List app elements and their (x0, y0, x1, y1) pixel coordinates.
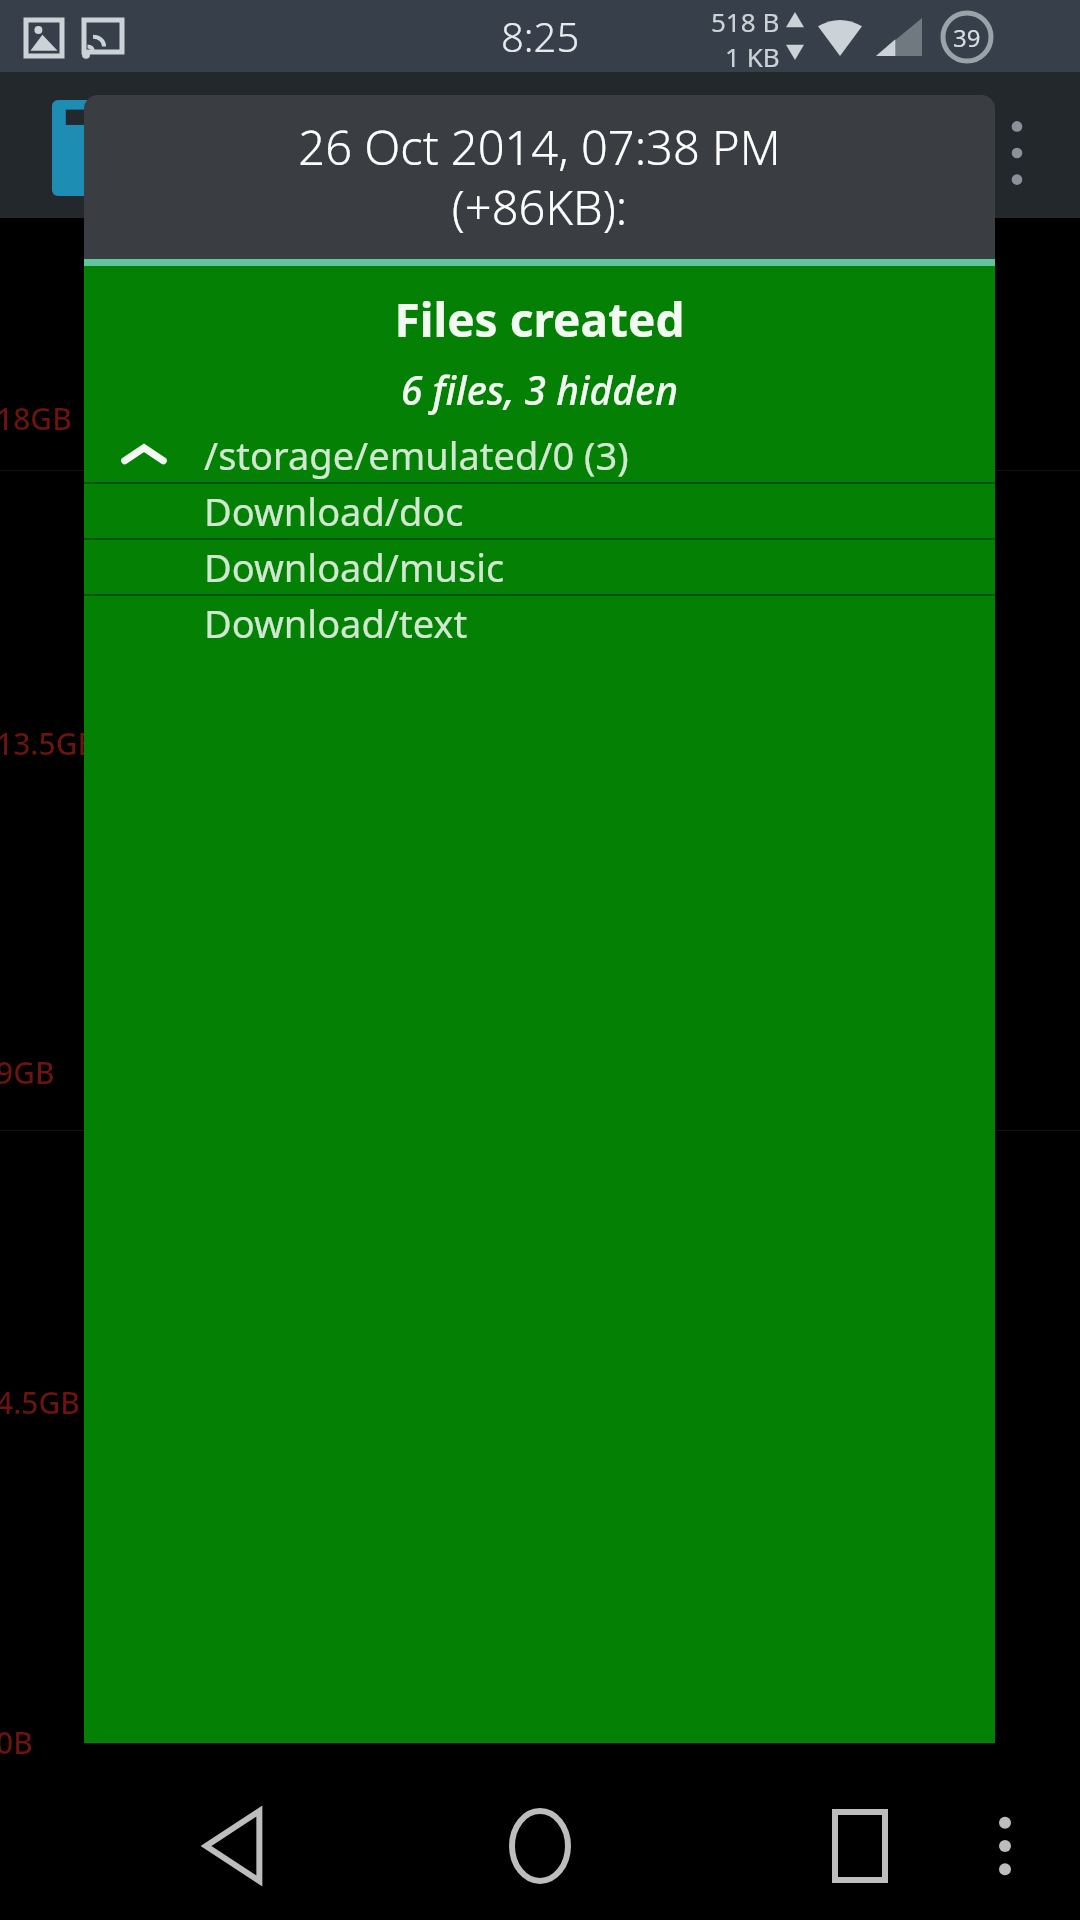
staticText: Download/music (204, 541, 505, 593)
other: Collapse group (84, 428, 204, 482)
staticText: 18GB (0, 398, 72, 439)
staticText: 1 KB (725, 39, 780, 74)
staticText: 26 Oct 2014, 07:38 PM (+86KB): (298, 115, 781, 239)
staticText: 13.5GB (0, 723, 98, 764)
button[interactable]: Collapse group (84, 428, 995, 482)
button[interactable]: Download/music (84, 540, 995, 594)
staticText: Files created (84, 288, 995, 351)
staticText: 4.5GB (0, 1382, 80, 1423)
staticText: Download/text (204, 597, 468, 649)
staticText: 8:25 (501, 9, 580, 63)
staticText: 0B (0, 1722, 33, 1763)
button[interactable]: Recent apps (800, 1786, 920, 1906)
staticText: Oct 27, 2014 (824, 1775, 988, 1813)
button[interactable]: Home (480, 1786, 600, 1906)
staticText: 6 files, 3 hidden (84, 363, 995, 416)
button[interactable]: Download/text (84, 596, 995, 650)
staticText: 39 (953, 21, 981, 54)
staticText: 518 B (711, 4, 780, 39)
staticText: 9GB (0, 1052, 55, 1093)
button[interactable]: Back (175, 1786, 295, 1906)
button[interactable]: More options (960, 1801, 1050, 1891)
button[interactable]: Download/doc (84, 484, 995, 538)
staticText: /storage/emulated/0 (3) (204, 429, 629, 481)
staticText: Download/doc (204, 485, 464, 537)
